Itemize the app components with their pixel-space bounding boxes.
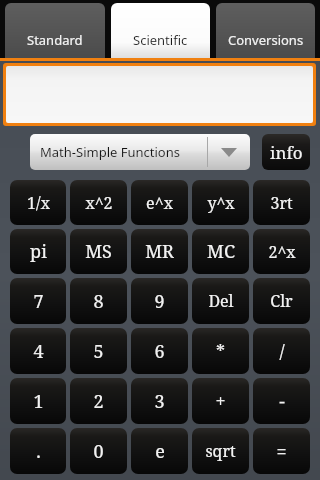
- staticText: sqrt: [205, 440, 236, 462]
- button[interactable]: 0: [70, 428, 127, 474]
- button[interactable]: 4: [10, 328, 66, 374]
- button[interactable]: 1: [10, 378, 66, 424]
- button[interactable]: -: [253, 378, 310, 424]
- button[interactable]: 7: [10, 278, 66, 324]
- button[interactable]: 3rt: [253, 180, 310, 225]
- button[interactable]: info: [262, 134, 310, 170]
- staticText: MC: [207, 239, 235, 264]
- staticText: y^x: [207, 192, 235, 214]
- button[interactable]: 3: [131, 378, 188, 424]
- staticText: -: [279, 389, 285, 414]
- button[interactable]: +: [192, 378, 249, 424]
- staticText: 1/x: [27, 192, 50, 214]
- staticText: Math-Simple Functions: [40, 143, 207, 161]
- button[interactable]: 2^x: [253, 229, 310, 274]
- staticText: 3rt: [270, 192, 293, 214]
- button[interactable]: =: [253, 428, 310, 474]
- button[interactable]: Standard: [5, 3, 105, 58]
- staticText: 8: [93, 289, 104, 314]
- staticText: 4: [33, 339, 44, 364]
- button[interactable]: sqrt: [192, 428, 249, 474]
- staticText: 7: [33, 289, 44, 314]
- staticText: 0: [93, 439, 104, 464]
- button[interactable]: MS: [70, 229, 127, 274]
- button[interactable]: Scientific: [111, 3, 210, 58]
- staticText: *: [216, 339, 225, 364]
- staticText: 1: [33, 389, 44, 414]
- staticText: .: [36, 439, 41, 464]
- button[interactable]: 1/x: [10, 180, 66, 225]
- button[interactable]: Clr: [253, 278, 310, 324]
- staticText: MR: [145, 239, 174, 264]
- button[interactable]: *: [192, 328, 249, 374]
- staticText: info: [270, 141, 303, 164]
- button[interactable]: x^2: [70, 180, 127, 225]
- staticText: 2: [93, 389, 104, 414]
- button[interactable]: MC: [192, 229, 249, 274]
- staticText: pi: [30, 239, 47, 264]
- staticText: Del: [208, 290, 234, 312]
- button[interactable]: Del: [192, 278, 249, 324]
- button[interactable]: 5: [70, 328, 127, 374]
- button[interactable]: 8: [70, 278, 127, 324]
- staticText: x^2: [85, 192, 113, 214]
- staticText: e: [155, 439, 165, 464]
- button[interactable]: /: [253, 328, 310, 374]
- button[interactable]: pi: [10, 229, 66, 274]
- staticText: e^x: [146, 192, 173, 214]
- staticText: Conversions: [228, 31, 304, 49]
- staticText: +: [215, 389, 226, 414]
- staticText: /: [279, 339, 285, 364]
- staticText: 3: [154, 389, 165, 414]
- staticText: MS: [85, 239, 112, 264]
- button[interactable]: e: [131, 428, 188, 474]
- staticText: 2^x: [268, 241, 296, 263]
- button[interactable]: Conversions: [216, 3, 315, 58]
- button[interactable]: 2: [70, 378, 127, 424]
- button[interactable]: MR: [131, 229, 188, 274]
- staticText: 9: [154, 289, 165, 314]
- button[interactable]: y^x: [192, 180, 249, 225]
- button[interactable]: [6, 66, 313, 123]
- button[interactable]: Math-Simple Functions: [30, 134, 250, 170]
- button[interactable]: 6: [131, 328, 188, 374]
- staticText: 6: [154, 339, 165, 364]
- button[interactable]: .: [10, 428, 66, 474]
- staticText: 5: [93, 339, 104, 364]
- staticText: Clr: [270, 290, 293, 312]
- button[interactable]: 9: [131, 278, 188, 324]
- staticText: Scientific: [133, 31, 188, 49]
- button[interactable]: e^x: [131, 180, 188, 225]
- staticText: =: [276, 439, 287, 464]
- staticText: Standard: [27, 31, 83, 49]
